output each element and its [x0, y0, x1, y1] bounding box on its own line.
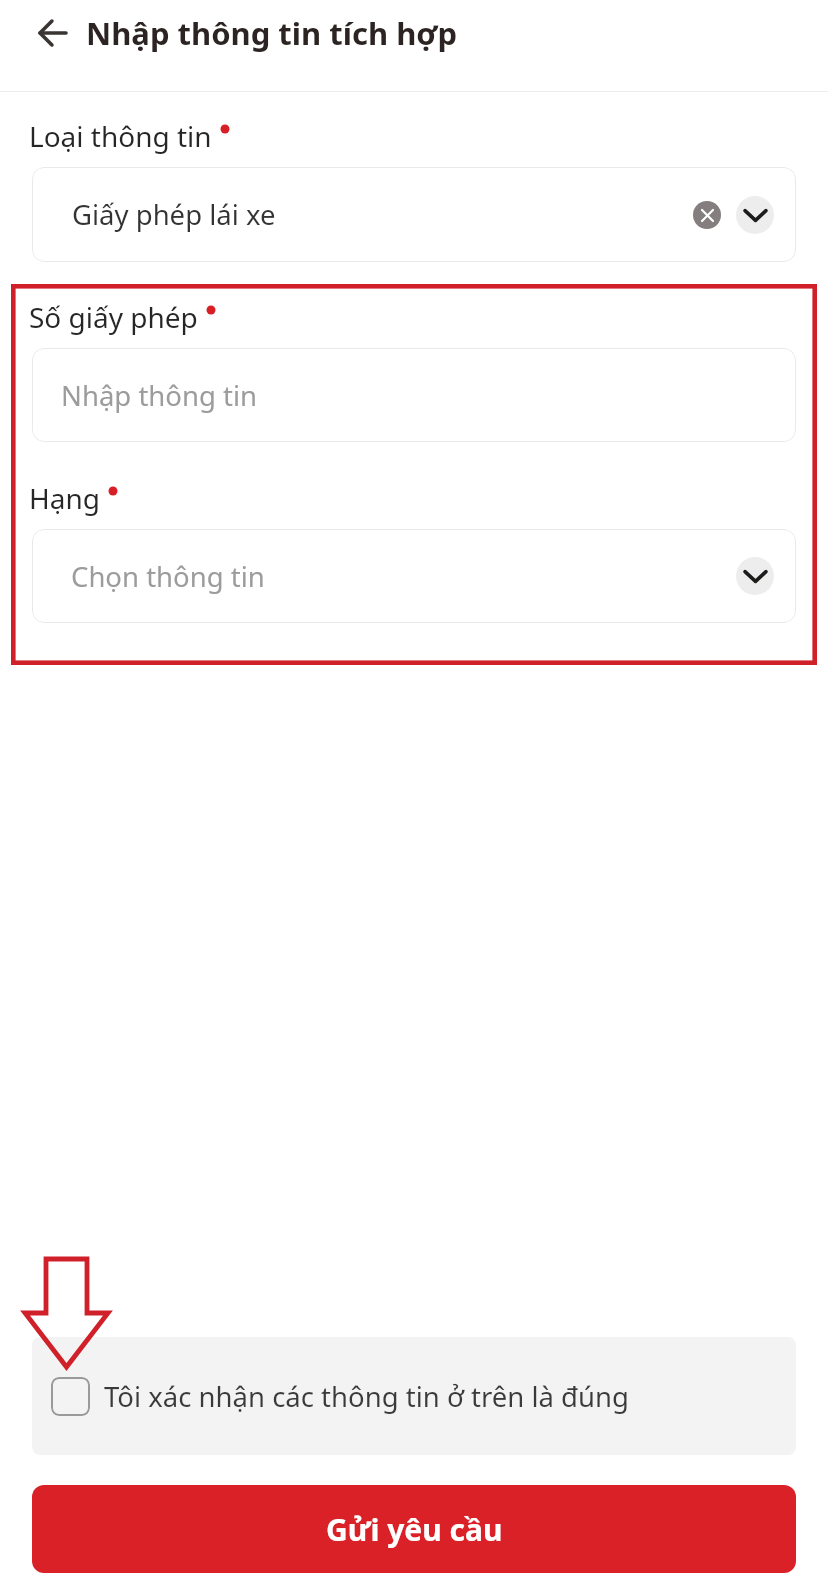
staticText: Nhập thông tin [61, 377, 258, 414]
staticText: Gửi yêu cầu [326, 1509, 503, 1550]
staticText: Loại thông tin [29, 117, 212, 155]
button[interactable]: Expand [736, 557, 774, 595]
button[interactable]: Tôi xác nhận các thông tin ở trên là đún… [32, 1337, 796, 1455]
staticText: Giấy phép lái xe [72, 196, 276, 233]
button[interactable]: Back [27, 7, 79, 59]
staticText: Chọn thông tin [71, 558, 265, 595]
button[interactable]: Expand [736, 196, 774, 234]
button[interactable]: Gửi yêu cầu [32, 1485, 796, 1573]
staticText: Tôi xác nhận các thông tin ở trên là đún… [104, 1378, 629, 1415]
button[interactable]: Nhập thông tin [32, 348, 796, 442]
staticText: Hạng [29, 479, 100, 517]
staticText: Số giấy phép [29, 298, 198, 336]
button[interactable]: Giấy phép lái xe [32, 167, 796, 262]
button[interactable]: Clear [693, 201, 721, 229]
button[interactable]: Chọn thông tin [32, 529, 796, 623]
staticText: Nhập thông tin tích hợp [86, 12, 458, 54]
